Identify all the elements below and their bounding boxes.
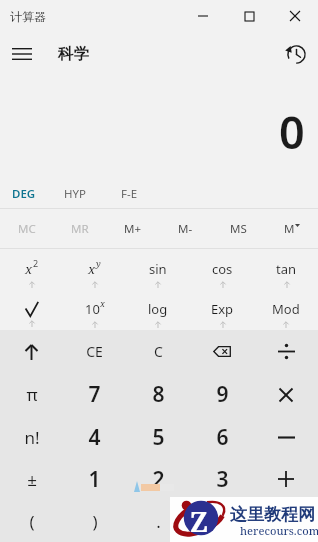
button[interactable]: History xyxy=(274,32,318,76)
button[interactable]: cos xyxy=(190,249,254,290)
staticText: M xyxy=(284,221,295,237)
staticText: x xyxy=(25,260,33,278)
button[interactable]: 0 xyxy=(190,500,254,542)
staticText: MR xyxy=(71,221,89,237)
button[interactable]: HYP xyxy=(48,180,102,208)
button[interactable]: x xyxy=(0,249,63,290)
button[interactable]: log xyxy=(126,290,190,330)
staticText: y xyxy=(96,257,101,269)
staticText: cos xyxy=(212,260,233,278)
button[interactable]: MS xyxy=(212,209,265,248)
staticText: 1 xyxy=(88,465,101,494)
button[interactable]: 10 xyxy=(63,290,126,330)
staticText: x xyxy=(100,297,105,309)
button[interactable]: 3 xyxy=(190,458,254,500)
staticText: Z xyxy=(190,503,209,540)
button[interactable]: Close xyxy=(272,0,318,32)
staticText: tan xyxy=(276,260,297,278)
staticText: HYP xyxy=(64,186,86,202)
staticText: 这里教程网 xyxy=(230,504,315,525)
button[interactable]: F-E xyxy=(102,180,156,208)
button[interactable]: MR xyxy=(53,209,106,248)
staticText: 0 xyxy=(279,101,305,162)
button[interactable]: C xyxy=(126,330,190,373)
staticText: DEG xyxy=(12,186,36,202)
staticText: . xyxy=(156,510,161,533)
button[interactable]: Maximize xyxy=(226,0,272,32)
button[interactable]: M+ xyxy=(106,209,159,248)
button[interactable]: tan xyxy=(254,249,318,290)
button[interactable]: sin xyxy=(126,249,190,290)
staticText: log xyxy=(148,300,168,318)
button[interactable]: 5 xyxy=(126,416,190,458)
button[interactable]: 8 xyxy=(126,373,190,416)
staticText: ( xyxy=(29,510,35,533)
staticText: M- xyxy=(178,221,193,237)
staticText: sin xyxy=(149,260,167,278)
staticText: CE xyxy=(86,342,103,361)
staticText: 9 xyxy=(216,380,229,409)
button[interactable]: . xyxy=(126,500,190,542)
staticText: ± xyxy=(27,468,37,491)
staticText: C xyxy=(154,342,163,361)
button[interactable]: Divide xyxy=(254,330,318,373)
staticText: MS xyxy=(230,221,247,237)
staticText: 3 xyxy=(216,465,229,494)
button[interactable]: x xyxy=(63,249,126,290)
button[interactable]: DEG xyxy=(0,180,48,208)
staticText: 科学 xyxy=(58,44,89,64)
staticText: 计算器 xyxy=(10,9,46,24)
button[interactable]: 1 xyxy=(63,458,126,500)
button[interactable]: ) xyxy=(63,500,126,542)
button[interactable]: Minimize xyxy=(180,0,226,32)
button[interactable]: Add xyxy=(254,458,318,500)
staticText: 10 xyxy=(85,300,100,318)
button[interactable]: Expand xyxy=(0,330,63,373)
staticText: Mod xyxy=(272,300,300,318)
staticText: Exp xyxy=(211,300,234,318)
staticText: x xyxy=(88,260,96,278)
button[interactable] xyxy=(0,290,63,330)
button[interactable]: n! xyxy=(0,416,63,458)
button[interactable]: 6 xyxy=(190,416,254,458)
staticText: 2 xyxy=(152,465,165,494)
staticText: π xyxy=(26,383,38,406)
staticText: 4 xyxy=(88,423,101,452)
button[interactable]: Exp xyxy=(190,290,254,330)
staticText: 8 xyxy=(152,380,165,409)
button[interactable]: CE xyxy=(63,330,126,373)
staticText: ) xyxy=(92,510,98,533)
staticText: 0 xyxy=(216,507,229,536)
staticText: 5 xyxy=(152,423,165,452)
button[interactable]: Backspace xyxy=(190,330,254,373)
button[interactable]: Mod xyxy=(254,290,318,330)
button[interactable]: M- xyxy=(159,209,212,248)
button[interactable]: π xyxy=(0,373,63,416)
button[interactable]: 9 xyxy=(190,373,254,416)
staticText: 7 xyxy=(88,380,101,409)
button[interactable]: ( xyxy=(0,500,63,542)
button[interactable]: Memory menu xyxy=(265,209,318,248)
button[interactable]: 2 xyxy=(126,458,190,500)
staticText: 6 xyxy=(216,423,229,452)
button[interactable]: ± xyxy=(0,458,63,500)
staticText: n! xyxy=(24,426,40,449)
staticText: herecours.com xyxy=(240,523,318,538)
button[interactable]: Equals xyxy=(254,500,318,542)
staticText: 2 xyxy=(33,257,39,269)
button[interactable]: Subtract xyxy=(254,416,318,458)
button[interactable]: MC xyxy=(0,209,53,248)
button[interactable]: 7 xyxy=(63,373,126,416)
staticText: F-E xyxy=(121,186,138,202)
staticText: MC xyxy=(18,221,36,237)
staticText: M+ xyxy=(124,221,142,237)
button[interactable]: Multiply xyxy=(254,373,318,416)
button[interactable]: Menu xyxy=(0,32,44,76)
button[interactable]: 4 xyxy=(63,416,126,458)
